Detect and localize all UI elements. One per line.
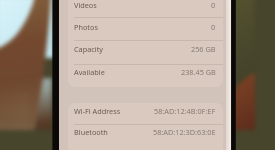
staticText: Wi-Fi Address (74, 106, 121, 116)
staticText: Bluetooth (74, 127, 108, 137)
staticText: 238.45 GB (181, 67, 216, 77)
button[interactable]: Photos (68, 22, 223, 39)
button[interactable]: Wi-Fi Address (68, 106, 223, 124)
staticText: Capacity (74, 44, 104, 54)
button[interactable]: Available (68, 67, 223, 87)
staticText: 256 GB (191, 44, 216, 54)
button[interactable]: Videos (68, 0, 223, 17)
staticText: 0 (211, 22, 216, 32)
button[interactable]: Bluetooth (68, 127, 223, 148)
staticText: Videos (74, 0, 97, 10)
staticText: Available (74, 67, 105, 77)
staticText: Photos (74, 22, 98, 32)
staticText: 58:AD:12:4B:0F:EF (154, 106, 216, 116)
staticText: 58:AD:12:3D:63:0E (153, 127, 216, 137)
staticText: 0 (211, 0, 216, 10)
button[interactable]: Capacity (68, 44, 223, 64)
